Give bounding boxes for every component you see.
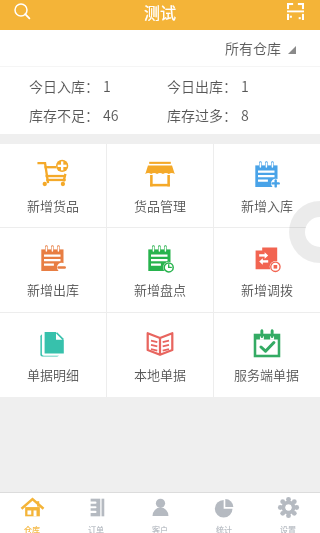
button[interactable]: 货品管理	[107, 144, 213, 227]
button[interactable]: Search	[0, 0, 44, 22]
staticText: 货品管理	[134, 196, 187, 215]
staticText: 统计	[216, 524, 232, 533]
button[interactable]: 新增货品	[0, 144, 106, 227]
button[interactable]: 服务端单据	[214, 313, 320, 397]
button[interactable]: 所有仓库	[213, 30, 320, 66]
button[interactable]: 仓库	[0, 493, 64, 533]
button[interactable]: 统计	[192, 493, 256, 533]
button[interactable]: 新增调拨	[214, 228, 320, 312]
button[interactable]: 新增入库	[214, 144, 320, 227]
staticText: 服务端单据	[234, 365, 300, 384]
staticText: 新增货品	[27, 196, 80, 215]
button[interactable]: 新增出库	[0, 228, 106, 312]
button[interactable]: 设置	[256, 493, 320, 533]
staticText: 库存过多：	[167, 105, 237, 125]
staticText: 新增出库	[27, 280, 80, 299]
staticText: 1	[241, 76, 249, 96]
staticText: 新增调拨	[241, 280, 294, 299]
button[interactable]: 订单	[64, 493, 128, 533]
staticText: 测试	[144, 0, 177, 22]
button[interactable]: 单据明细	[0, 313, 106, 397]
staticText: 订单	[88, 524, 104, 533]
button[interactable]: Scan QR code	[271, 0, 320, 22]
staticText: 新增入库	[241, 196, 294, 215]
staticText: 今日入库：	[29, 76, 99, 96]
staticText: 客户	[152, 524, 168, 533]
staticText: 1	[103, 76, 111, 96]
staticText: 单据明细	[27, 365, 80, 384]
staticText: 46	[103, 105, 119, 125]
staticText: 8	[241, 105, 249, 125]
staticText: 本地单据	[134, 365, 187, 384]
staticText: 库存不足：	[29, 105, 99, 125]
staticText: 新增盘点	[134, 280, 187, 299]
button[interactable]: 新增盘点	[107, 228, 213, 312]
staticText: 今日出库：	[167, 76, 237, 96]
button[interactable]: 本地单据	[107, 313, 213, 397]
staticText: 设置	[280, 524, 296, 533]
button[interactable]: 客户	[128, 493, 192, 533]
staticText: 仓库	[24, 524, 40, 533]
staticText: 所有仓库	[225, 38, 281, 58]
